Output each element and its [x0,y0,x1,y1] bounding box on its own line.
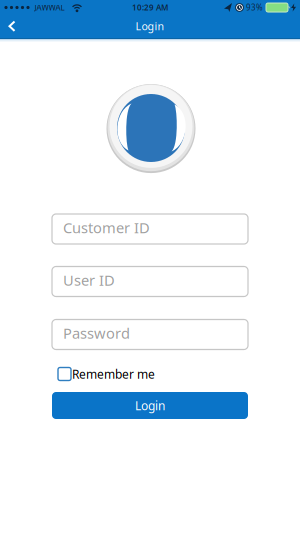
staticText: JAWWAL [34,2,64,13]
staticText: Customer ID [63,218,150,237]
staticText: User ID [63,270,115,290]
staticText: 93% [246,2,263,13]
staticText: Login [135,19,164,33]
button[interactable]: Remember me [58,366,155,382]
staticText: Remember me [72,366,155,382]
button[interactable]: Password [52,319,248,349]
button[interactable]: User ID [52,266,248,296]
staticText: Password [63,323,130,343]
staticText: Login [135,397,165,413]
button[interactable]: Customer ID [52,214,248,244]
button[interactable]: Login [52,392,248,419]
staticText: 10:29 AM [132,2,168,13]
button[interactable]: Back [0,14,28,38]
